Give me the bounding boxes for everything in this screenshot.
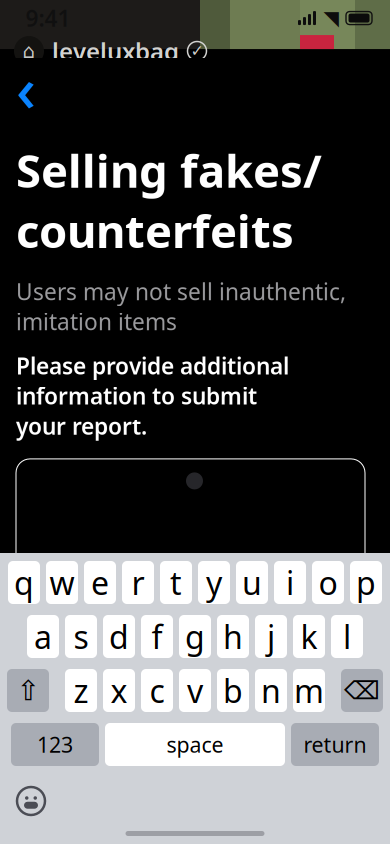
button[interactable]: y <box>198 561 230 604</box>
staticText: s <box>73 615 88 658</box>
button[interactable]: Shift <box>7 669 49 712</box>
staticText: 123 <box>37 730 73 759</box>
staticText: g <box>185 615 205 658</box>
staticText: p <box>356 561 376 604</box>
staticText: t <box>170 561 182 604</box>
staticText: Please provide additional information to… <box>16 351 289 441</box>
staticText: Submit <box>236 599 323 632</box>
staticText: space <box>166 730 223 759</box>
staticText: u <box>242 561 262 604</box>
staticText: ⇧ <box>16 675 39 706</box>
staticText: b <box>223 669 243 712</box>
button[interactable]: z <box>65 669 97 712</box>
staticText: ◥ <box>323 7 338 29</box>
staticText: n <box>261 669 281 712</box>
staticText: h <box>223 615 243 658</box>
button[interactable]: b <box>217 669 249 712</box>
staticText: o <box>318 561 337 604</box>
button[interactable]: k <box>293 615 325 658</box>
staticText: l <box>343 615 351 658</box>
staticText: ⌫ <box>344 676 380 705</box>
staticText: leveluxbag <box>52 35 179 67</box>
staticText: Users may not sell inauthentic, imitatio… <box>16 276 346 337</box>
button[interactable]: Delete <box>341 669 383 712</box>
button[interactable]: Cancel <box>16 594 186 637</box>
staticText: a <box>34 615 52 658</box>
button[interactable]: d <box>103 615 135 658</box>
staticText: x <box>110 669 127 712</box>
staticText: Selling fakes/ counterfeits <box>16 140 322 260</box>
staticText: i <box>286 561 294 604</box>
button[interactable]: p <box>350 561 382 604</box>
staticText: Cancel <box>59 599 142 632</box>
button[interactable]: n <box>255 669 287 712</box>
staticText: return <box>303 730 366 759</box>
button[interactable]: g <box>179 615 211 658</box>
button[interactable]: s <box>65 615 97 658</box>
button[interactable]: 123 <box>11 723 99 766</box>
button[interactable]: return <box>291 723 379 766</box>
button[interactable]: Submit <box>195 594 365 637</box>
button[interactable]: q <box>8 561 40 604</box>
button[interactable]: a <box>27 615 59 658</box>
staticText: q <box>14 561 34 604</box>
button[interactable]: Back <box>4 66 48 110</box>
staticText: e <box>91 561 109 604</box>
button[interactable]: w <box>46 561 78 604</box>
staticText: r <box>131 561 144 604</box>
staticText: y <box>206 561 222 604</box>
staticText: ‹ <box>16 47 36 129</box>
staticText: ⌂ <box>22 40 35 62</box>
staticText: m <box>294 669 324 712</box>
staticText: k <box>300 615 317 658</box>
staticText: c <box>149 669 164 712</box>
staticText: z <box>73 669 88 712</box>
button[interactable]: c <box>141 669 173 712</box>
button[interactable]: i <box>274 561 306 604</box>
button[interactable]: space <box>105 723 285 766</box>
button[interactable]: v <box>179 669 211 712</box>
staticText: 9:41 <box>25 3 70 33</box>
button[interactable]: h <box>217 615 249 658</box>
button[interactable]: f <box>141 615 173 658</box>
button[interactable]: t <box>160 561 192 604</box>
button[interactable]: j <box>255 615 287 658</box>
button[interactable]: Emoji keyboard <box>9 779 53 823</box>
button[interactable]: m <box>293 669 325 712</box>
staticText: ✓ <box>190 42 203 60</box>
staticText: j <box>267 615 275 658</box>
button[interactable]: r <box>122 561 154 604</box>
button[interactable]: u <box>236 561 268 604</box>
staticText: v <box>187 669 203 712</box>
button[interactable]: o <box>312 561 344 604</box>
button[interactable]: x <box>103 669 135 712</box>
staticText: w <box>49 561 74 604</box>
button[interactable]: e <box>84 561 116 604</box>
button[interactable]: l <box>331 615 363 658</box>
staticText: d <box>109 615 129 658</box>
staticText: f <box>151 615 162 658</box>
